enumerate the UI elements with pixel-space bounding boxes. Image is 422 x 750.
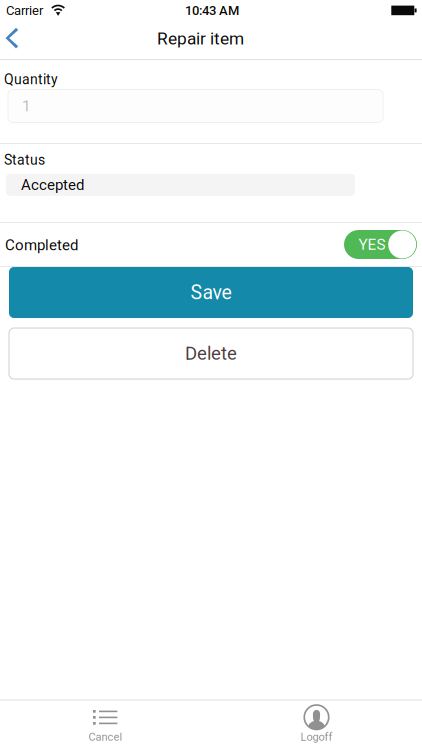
staticText: 1 — [22, 97, 31, 115]
button[interactable]: Save — [9, 267, 413, 318]
staticText: Repair item — [157, 28, 244, 49]
staticText: Save — [190, 281, 231, 304]
staticText: 10:43 AM — [185, 3, 239, 18]
staticText: Logoff — [300, 731, 332, 743]
staticText: Completed — [5, 236, 78, 254]
button[interactable]: Completed — [344, 230, 417, 259]
staticText: Delete — [185, 343, 237, 364]
button[interactable]: Logoff — [211, 700, 422, 750]
staticText: Cancel — [88, 731, 122, 743]
button[interactable]: Delete — [9, 328, 413, 379]
staticText: Quantity — [4, 71, 58, 88]
button[interactable]: Cancel — [0, 700, 211, 750]
staticText: Status — [4, 152, 45, 168]
staticText: Carrier — [6, 3, 43, 18]
button[interactable]: Accepted — [6, 174, 355, 196]
staticText: YES — [358, 235, 385, 253]
staticText: Accepted — [21, 176, 84, 194]
button[interactable]: Back — [0, 17, 32, 59]
